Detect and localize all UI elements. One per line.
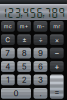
staticText: 6 xyxy=(38,62,43,71)
staticText: 1 xyxy=(6,75,9,85)
button[interactable]: C xyxy=(1,34,15,45)
button[interactable]: 6 xyxy=(34,61,47,72)
staticText: 7 xyxy=(5,48,10,58)
button[interactable]: 5 xyxy=(17,61,31,72)
staticText: . xyxy=(39,88,41,98)
staticText: m- xyxy=(37,23,44,30)
button[interactable]: × xyxy=(50,34,64,45)
button[interactable]: 1 xyxy=(1,75,15,85)
button[interactable]: m+ xyxy=(17,21,31,32)
button[interactable]: + xyxy=(50,61,64,72)
button[interactable]: 3 xyxy=(34,75,47,85)
staticText: − xyxy=(54,48,59,58)
staticText: × xyxy=(55,36,59,44)
staticText: = xyxy=(54,87,59,97)
staticText: mr xyxy=(53,23,60,30)
button[interactable]: m- xyxy=(34,21,47,32)
staticText: 0 xyxy=(13,88,18,98)
staticText: mc xyxy=(4,23,12,30)
staticText: 2 xyxy=(22,75,27,85)
button[interactable]: mc xyxy=(1,21,15,32)
button[interactable]: 0 xyxy=(1,88,31,99)
staticText: C xyxy=(5,36,10,44)
button[interactable]: mr xyxy=(50,21,64,32)
staticText: 4 xyxy=(5,62,10,71)
staticText: + xyxy=(54,62,59,71)
button[interactable]: 4 xyxy=(1,61,15,72)
staticText: 5 xyxy=(22,62,27,71)
button[interactable]: ± xyxy=(17,34,31,45)
staticText: 123,456,789 xyxy=(0,7,65,19)
staticText: 8 xyxy=(22,48,27,58)
button[interactable]: 8 xyxy=(17,48,31,58)
button[interactable]: = xyxy=(50,75,64,99)
staticText: ÷ xyxy=(38,36,42,44)
staticText: m+ xyxy=(20,23,29,30)
button[interactable]: 7 xyxy=(1,48,15,58)
button[interactable]: 9 xyxy=(34,48,47,58)
button[interactable]: 2 xyxy=(17,75,31,85)
button[interactable]: − xyxy=(50,48,64,58)
staticText: 9 xyxy=(38,48,43,58)
staticText: ± xyxy=(22,36,26,44)
button[interactable]: . xyxy=(34,88,47,99)
staticText: 3 xyxy=(38,75,43,85)
button[interactable]: ÷ xyxy=(34,34,47,45)
